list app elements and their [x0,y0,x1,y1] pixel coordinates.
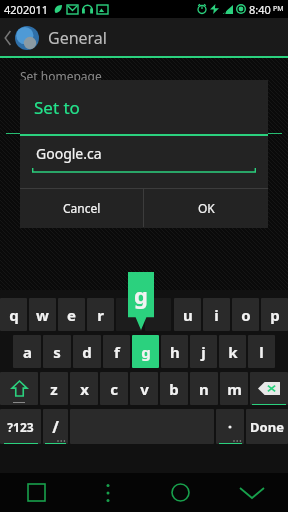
staticText: / [52,416,59,438]
button[interactable]: n [190,372,218,405]
button[interactable]: Cancel [20,189,143,227]
staticText: ?123 [7,419,34,435]
staticText: i [214,305,219,325]
button[interactable]: c [100,372,128,405]
staticText: Set homepage [20,68,102,84]
button[interactable]: Recents [0,473,72,512]
staticText: s [53,342,61,362]
button[interactable]: u [174,298,201,331]
staticText: r [97,305,104,325]
button[interactable]: OK [144,189,268,227]
button[interactable]: m [220,372,248,405]
staticText: p [270,305,280,325]
button[interactable] [116,298,142,331]
button[interactable]: Backspace [250,372,288,405]
button[interactable]: Hide keyboard [216,473,288,512]
staticText: x [80,379,89,399]
staticText: Google.ca [36,144,102,163]
staticText: n [199,379,209,399]
staticText: v [140,379,149,399]
button[interactable]: Home [144,473,216,512]
staticText: Done [250,418,284,436]
staticText: General [48,27,107,49]
staticText: u [183,305,193,325]
staticText: f [114,342,120,362]
button[interactable]: e [58,298,85,331]
staticText: Cancel [63,200,101,216]
staticText: z [50,379,58,399]
button[interactable]: r [87,298,114,331]
button[interactable]: Done [246,409,288,444]
staticText: c [110,379,118,399]
button[interactable]: h [161,335,188,368]
button[interactable]: v [130,372,158,405]
staticText: g [134,280,148,310]
button[interactable]: ?123 [0,409,41,444]
button[interactable]: a [13,335,41,368]
button[interactable]: j [190,335,217,368]
button[interactable]: p [261,298,288,331]
button[interactable] [145,298,171,331]
staticText: 4202011 [4,2,49,17]
button[interactable]: i [203,298,230,331]
staticText: o [241,305,251,325]
staticText: Set to [34,96,80,119]
button[interactable]: General [4,18,288,58]
button[interactable]: f [103,335,130,368]
staticText: w [36,305,49,325]
button[interactable]: g [132,335,159,368]
button[interactable]: Menu [72,473,144,512]
button[interactable]: k [219,335,246,368]
staticText: e [67,305,76,325]
button[interactable]: z [40,372,68,405]
staticText: j [201,342,206,362]
staticText: l [259,342,264,362]
staticText: a [23,342,32,362]
button[interactable] [216,409,244,444]
button[interactable]: o [232,298,259,331]
button[interactable]: d [73,335,101,368]
button[interactable]: q [0,298,27,331]
staticText: q [9,305,19,325]
button[interactable]: Shift [0,372,38,405]
staticText: g [141,342,151,362]
staticText: h [170,342,180,362]
button[interactable]: w [29,298,56,331]
button[interactable]: l [248,335,275,368]
button[interactable]: s [43,335,71,368]
button[interactable]: x [70,372,98,405]
staticText: 8:40 [249,2,271,17]
button[interactable]: b [160,372,188,405]
staticText: d [82,342,92,362]
staticText: PM [273,4,284,14]
button[interactable]: / [43,409,68,444]
staticText: b [169,379,179,399]
staticText: OK [198,200,215,216]
staticText: k [228,342,238,362]
staticText: m [227,379,242,399]
